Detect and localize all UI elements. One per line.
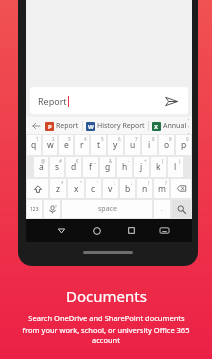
staticText: ; [131,180,133,186]
button[interactable]: k [151,157,166,177]
staticText: q [31,139,37,151]
staticText: x [74,183,79,195]
staticText: 2 [52,136,55,142]
staticText: 8 [152,136,155,142]
staticText: w [47,139,54,151]
button[interactable]: j [134,157,149,177]
button[interactable]: s [50,157,64,177]
button[interactable]: n [137,179,152,198]
button[interactable]: Delete [171,179,191,198]
staticText: 123 [30,206,39,213]
staticText: d [71,161,77,173]
staticText: Search OneDrive and SharePoint documents [28,313,185,323]
button[interactable]: g [100,157,115,177]
staticText: from your work, school, or university Of… [8,325,204,345]
staticText: h [122,161,128,173]
button[interactable]: More suggestions [188,117,189,134]
staticText: space [98,204,117,214]
staticText: m [158,183,166,195]
staticText: y [113,139,118,151]
button[interactable]: Search [172,200,191,218]
button[interactable]: 123 [27,200,42,218]
staticText: X [154,123,159,131]
button[interactable]: a [34,157,48,177]
staticText: 1 [36,136,39,142]
button[interactable]: Report [30,87,188,114]
staticText: # [59,158,62,164]
button[interactable]: X [151,121,188,131]
staticText: ' [97,180,99,186]
staticText: Report [56,121,79,131]
staticText: f [89,161,92,173]
staticText: * [61,180,64,186]
staticText: ? [165,180,167,186]
button[interactable]: h [117,157,132,177]
staticText: 0 [186,136,189,142]
button[interactable]: x [68,179,84,198]
button[interactable]: f [83,157,98,177]
button[interactable]: i [142,135,157,155]
staticText: . [161,205,163,213]
button[interactable]: P [44,121,80,131]
staticText: 9 [169,136,172,142]
button[interactable]: y [108,135,123,155]
staticText: l [174,161,177,173]
staticText: History Report [97,121,145,131]
button[interactable]: o [159,135,174,155]
staticText: : [114,180,116,186]
staticText: P [48,123,52,131]
button[interactable]: Voice input [44,200,60,218]
staticText: s [55,161,60,173]
button[interactable]: p [176,135,191,155]
staticText: 6 [118,136,121,142]
staticText: b [125,183,131,195]
button[interactable]: W [85,121,146,131]
staticText: @ [41,158,46,164]
button[interactable]: v [103,179,118,198]
button[interactable]: Switch keyboard [149,219,180,242]
staticText: 5 [101,136,104,142]
staticText: Annual [163,121,187,131]
staticText: o [164,139,170,151]
button[interactable]: Recent apps [114,219,149,242]
button[interactable]: m [154,179,169,198]
staticText: 4 [84,136,87,142]
staticText: - [128,158,130,164]
staticText: + [144,158,147,164]
staticText: v [108,183,113,195]
button[interactable]: Shift [27,179,48,198]
staticText: c [91,183,96,195]
button[interactable]: . [154,200,170,218]
staticText: i [148,139,151,151]
button[interactable]: d [66,157,81,177]
staticText: n [142,183,148,195]
button[interactable]: l [168,157,183,177]
staticText: r [80,139,84,151]
button[interactable]: Send [162,92,180,110]
button[interactable]: e [59,135,73,155]
staticText: p [181,139,187,151]
button[interactable]: c [86,179,101,198]
staticText: W [88,123,94,131]
button[interactable]: z [50,179,66,198]
staticText: z [56,183,60,195]
button[interactable]: w [43,135,57,155]
button[interactable]: t [91,135,106,155]
staticText: k [156,161,161,173]
button[interactable]: space [62,200,152,218]
button[interactable]: Hide keyboard [44,219,79,242]
staticText: € [76,158,79,164]
staticText: t [97,139,101,151]
staticText: 7 [135,136,138,142]
staticText: ! [148,180,150,186]
button[interactable]: b [120,179,135,198]
button[interactable]: Home [79,219,114,242]
staticText: & [109,158,113,164]
button[interactable]: u [125,135,140,155]
staticText: ( [162,158,164,164]
button[interactable]: Back [29,119,42,132]
button[interactable]: r [75,135,89,155]
staticText: j [140,161,143,173]
button[interactable]: q [27,135,41,155]
staticText: u [130,139,136,151]
